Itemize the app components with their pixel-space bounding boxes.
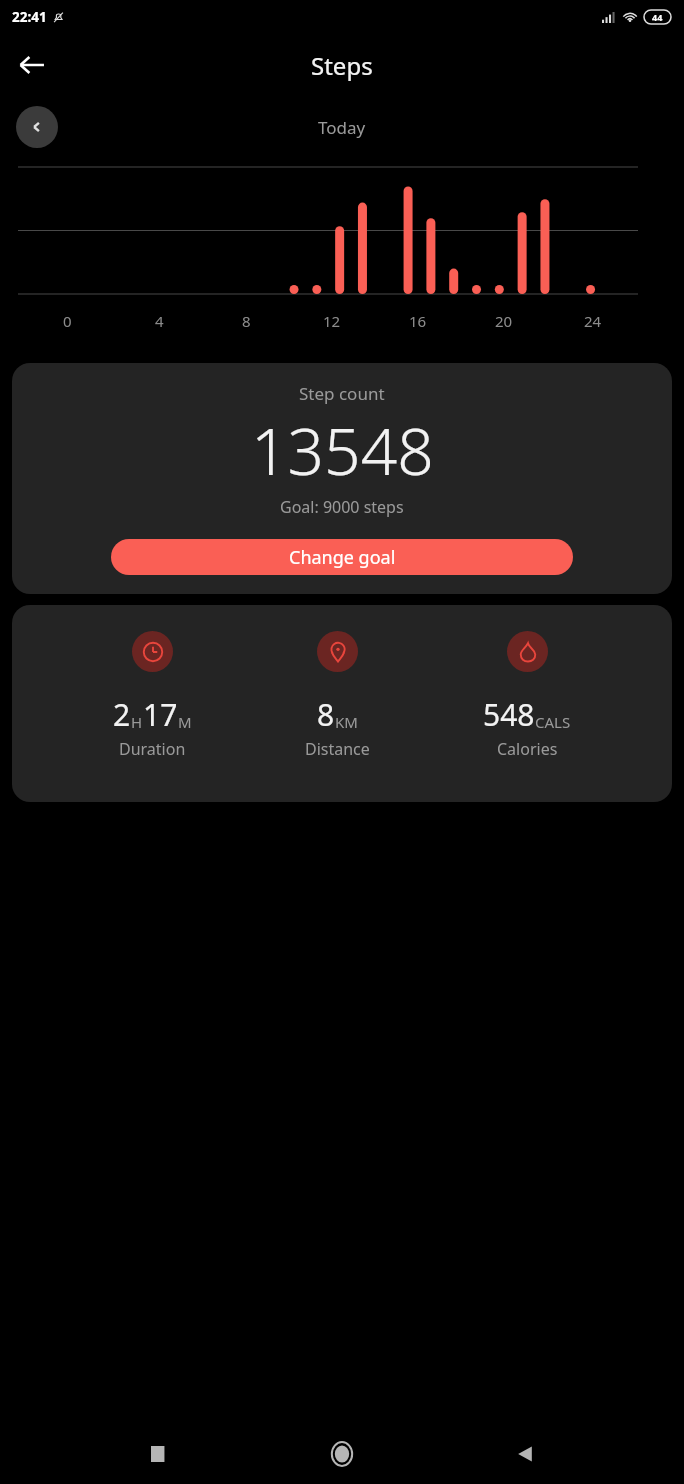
staticText: 13548 — [251, 407, 434, 494]
staticText: Goal: 9000 steps — [280, 496, 404, 518]
staticText: 22:41 — [12, 8, 47, 26]
staticText: 0 — [63, 311, 72, 331]
staticText: Step count — [299, 382, 385, 405]
staticText: 4 — [155, 311, 164, 331]
staticText: Today — [318, 116, 366, 139]
button[interactable]: Change goal — [111, 539, 573, 575]
staticText: 24 — [584, 311, 602, 331]
button[interactable]: 8 — [293, 631, 382, 760]
staticText: 44 — [652, 11, 663, 23]
staticText: Steps — [311, 49, 373, 82]
button[interactable]: Back — [8, 41, 56, 89]
button[interactable]: Home — [318, 1430, 366, 1478]
button[interactable]: Step count — [12, 363, 672, 594]
staticText: 548 — [483, 694, 535, 735]
staticText: M — [178, 712, 192, 732]
staticText: 12 — [323, 311, 341, 331]
button[interactable]: 548 — [471, 631, 583, 760]
staticText: H — [131, 712, 143, 732]
button[interactable]: 2 — [101, 631, 204, 760]
staticText: CALS — [535, 712, 571, 732]
button[interactable]: Previous day — [16, 106, 58, 148]
staticText: 8 — [317, 694, 335, 735]
staticText: 20 — [495, 311, 513, 331]
staticText: 16 — [409, 311, 427, 331]
button[interactable]: Recent apps — [135, 1430, 183, 1478]
staticText: Duration — [119, 738, 186, 760]
staticText: 17 — [143, 694, 178, 735]
staticText: 2 — [113, 694, 131, 735]
staticText: Distance — [305, 738, 370, 760]
staticText: 8 — [242, 311, 251, 331]
staticText: Change goal — [289, 545, 396, 570]
staticText: Calories — [497, 738, 558, 760]
button[interactable]: Back — [501, 1430, 549, 1478]
staticText: KM — [335, 712, 358, 732]
